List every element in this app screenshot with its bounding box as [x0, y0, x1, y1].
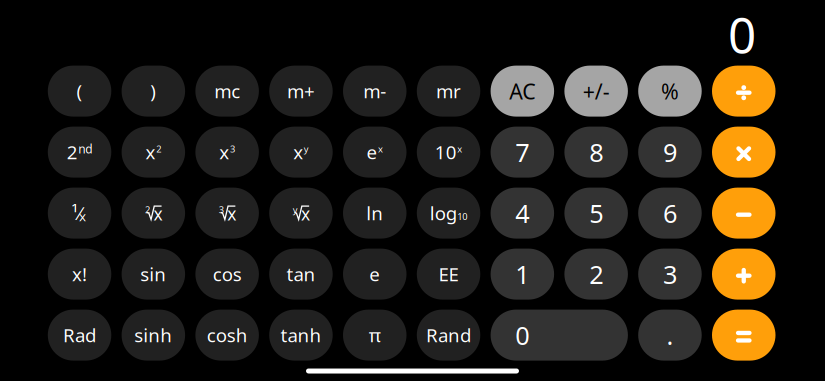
staticText: π [369, 323, 381, 347]
button[interactable]: 7 [491, 127, 554, 178]
staticText: 0 [515, 318, 529, 352]
staticText: nd [78, 141, 92, 157]
button[interactable]: y root of x [269, 188, 333, 239]
button[interactable]: 5 [564, 188, 628, 239]
button[interactable]: Plus [712, 249, 775, 300]
button[interactable]: Rad [48, 310, 111, 361]
button[interactable]: 1 [491, 249, 554, 300]
button[interactable]: sin [122, 249, 185, 300]
staticText: 10 [435, 140, 457, 164]
button[interactable]: mr [417, 66, 480, 117]
staticText: 3 [219, 203, 224, 216]
button[interactable]: one over x [48, 188, 111, 239]
staticText: e [369, 262, 380, 286]
staticText: ) [150, 79, 156, 103]
staticText: y [293, 203, 298, 216]
button[interactable]: x squared [122, 127, 185, 178]
button[interactable]: m- [343, 66, 406, 117]
staticText: 0 [728, 1, 756, 67]
button[interactable]: e [343, 249, 406, 300]
staticText: 2 [156, 143, 161, 155]
button[interactable]: ) [122, 66, 185, 117]
button[interactable]: 2 [564, 249, 628, 300]
staticText: AC [509, 77, 535, 105]
staticText: tan [286, 262, 315, 286]
staticText: x [301, 202, 310, 225]
staticText: 8 [589, 135, 603, 169]
button[interactable]: sinh [122, 310, 185, 361]
staticText: 2 [145, 203, 150, 216]
button[interactable]: ten to the x [417, 127, 480, 178]
button[interactable]: tan [269, 249, 333, 300]
staticText: sinh [134, 323, 172, 347]
button[interactable]: log base ten [417, 188, 480, 239]
button[interactable]: 8 [564, 127, 628, 178]
button[interactable]: tanh [269, 310, 333, 361]
staticText: e [366, 140, 377, 164]
staticText: m- [363, 79, 386, 103]
button[interactable]: ln [343, 188, 406, 239]
button[interactable]: 6 [638, 188, 702, 239]
button[interactable]: π [343, 310, 406, 361]
button[interactable]: mc [195, 66, 259, 117]
button[interactable]: cube root of x [195, 188, 259, 239]
staticText: 6 [663, 196, 677, 230]
staticText: 2 [589, 257, 603, 291]
staticText: 3 [230, 143, 235, 155]
button[interactable]: x to the y [269, 127, 333, 178]
button[interactable]: % [638, 66, 702, 117]
staticText: ln [366, 201, 383, 225]
button[interactable]: cos [195, 249, 259, 300]
button[interactable]: Minus [712, 188, 775, 239]
button[interactable]: Divide [712, 66, 775, 117]
staticText: y [304, 143, 309, 155]
staticText: cos [213, 262, 242, 286]
staticText: 5 [589, 196, 603, 230]
staticText: % [661, 77, 679, 105]
staticText: 9 [663, 135, 677, 169]
staticText: log [430, 201, 457, 225]
staticText: x [153, 202, 162, 225]
staticText: x! [72, 262, 87, 286]
staticText: +/- [583, 77, 610, 105]
staticText: EE [439, 262, 459, 286]
button[interactable]: Equals [712, 310, 775, 361]
staticText: 4 [515, 196, 529, 230]
staticText: x [378, 143, 383, 155]
button[interactable]: x cubed [195, 127, 259, 178]
staticText: x [227, 202, 236, 225]
button[interactable]: +/- [564, 66, 628, 117]
staticText: m+ [287, 79, 315, 103]
button[interactable]: 0 [491, 310, 628, 361]
staticText: ( [76, 79, 82, 103]
staticText: x [79, 207, 86, 225]
staticText: x [457, 143, 462, 155]
button[interactable]: 3 [638, 249, 702, 300]
button[interactable]: ( [48, 66, 111, 117]
staticText: 10 [457, 210, 467, 222]
staticText: 7 [515, 135, 529, 169]
staticText: sin [140, 262, 166, 286]
button[interactable]: . [638, 310, 702, 361]
staticText: x [145, 140, 155, 164]
button[interactable]: square root of x [122, 188, 185, 239]
staticText: 2 [67, 140, 78, 164]
button[interactable]: 2nd [48, 127, 111, 178]
staticText: 3 [663, 257, 677, 291]
button[interactable]: EE [417, 249, 480, 300]
button[interactable]: m+ [269, 66, 333, 117]
button[interactable]: 9 [638, 127, 702, 178]
button[interactable]: AC [491, 66, 554, 117]
button[interactable]: x! [48, 249, 111, 300]
staticText: ¹⁄ [71, 201, 80, 225]
staticText: x [293, 140, 303, 164]
staticText: mc [214, 79, 240, 103]
button[interactable]: e to the x [343, 127, 406, 178]
button[interactable]: Multiply [712, 127, 775, 178]
button[interactable]: Rand [417, 310, 480, 361]
staticText: Rand [426, 323, 471, 347]
staticText: cosh [207, 323, 248, 347]
staticText: . [666, 318, 673, 352]
button[interactable]: cosh [195, 310, 259, 361]
button[interactable]: 4 [491, 188, 554, 239]
